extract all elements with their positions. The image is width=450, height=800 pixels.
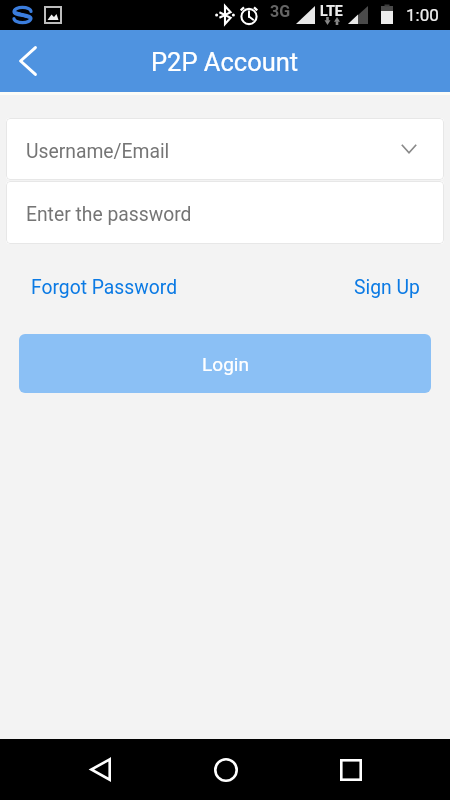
button[interactable]: Username/Email: [6, 118, 444, 180]
button[interactable]: Back: [38, 739, 163, 800]
staticText: P2P Account: [151, 47, 299, 77]
staticText: 3G: [270, 2, 291, 21]
button[interactable]: Enter the password: [6, 181, 444, 244]
button[interactable]: Sign Up: [354, 269, 420, 300]
staticText: 1:00: [406, 5, 439, 25]
button[interactable]: Recent apps: [288, 739, 413, 800]
button[interactable]: Home: [163, 739, 288, 800]
staticText: Username/Email: [26, 140, 170, 163]
button[interactable]: Back: [0, 30, 56, 92]
button[interactable]: Login: [19, 334, 431, 393]
button[interactable]: Forgot Password: [31, 269, 178, 300]
staticText: Enter the password: [26, 203, 192, 226]
staticText: Login: [202, 353, 249, 375]
staticText: LTE: [320, 3, 343, 19]
